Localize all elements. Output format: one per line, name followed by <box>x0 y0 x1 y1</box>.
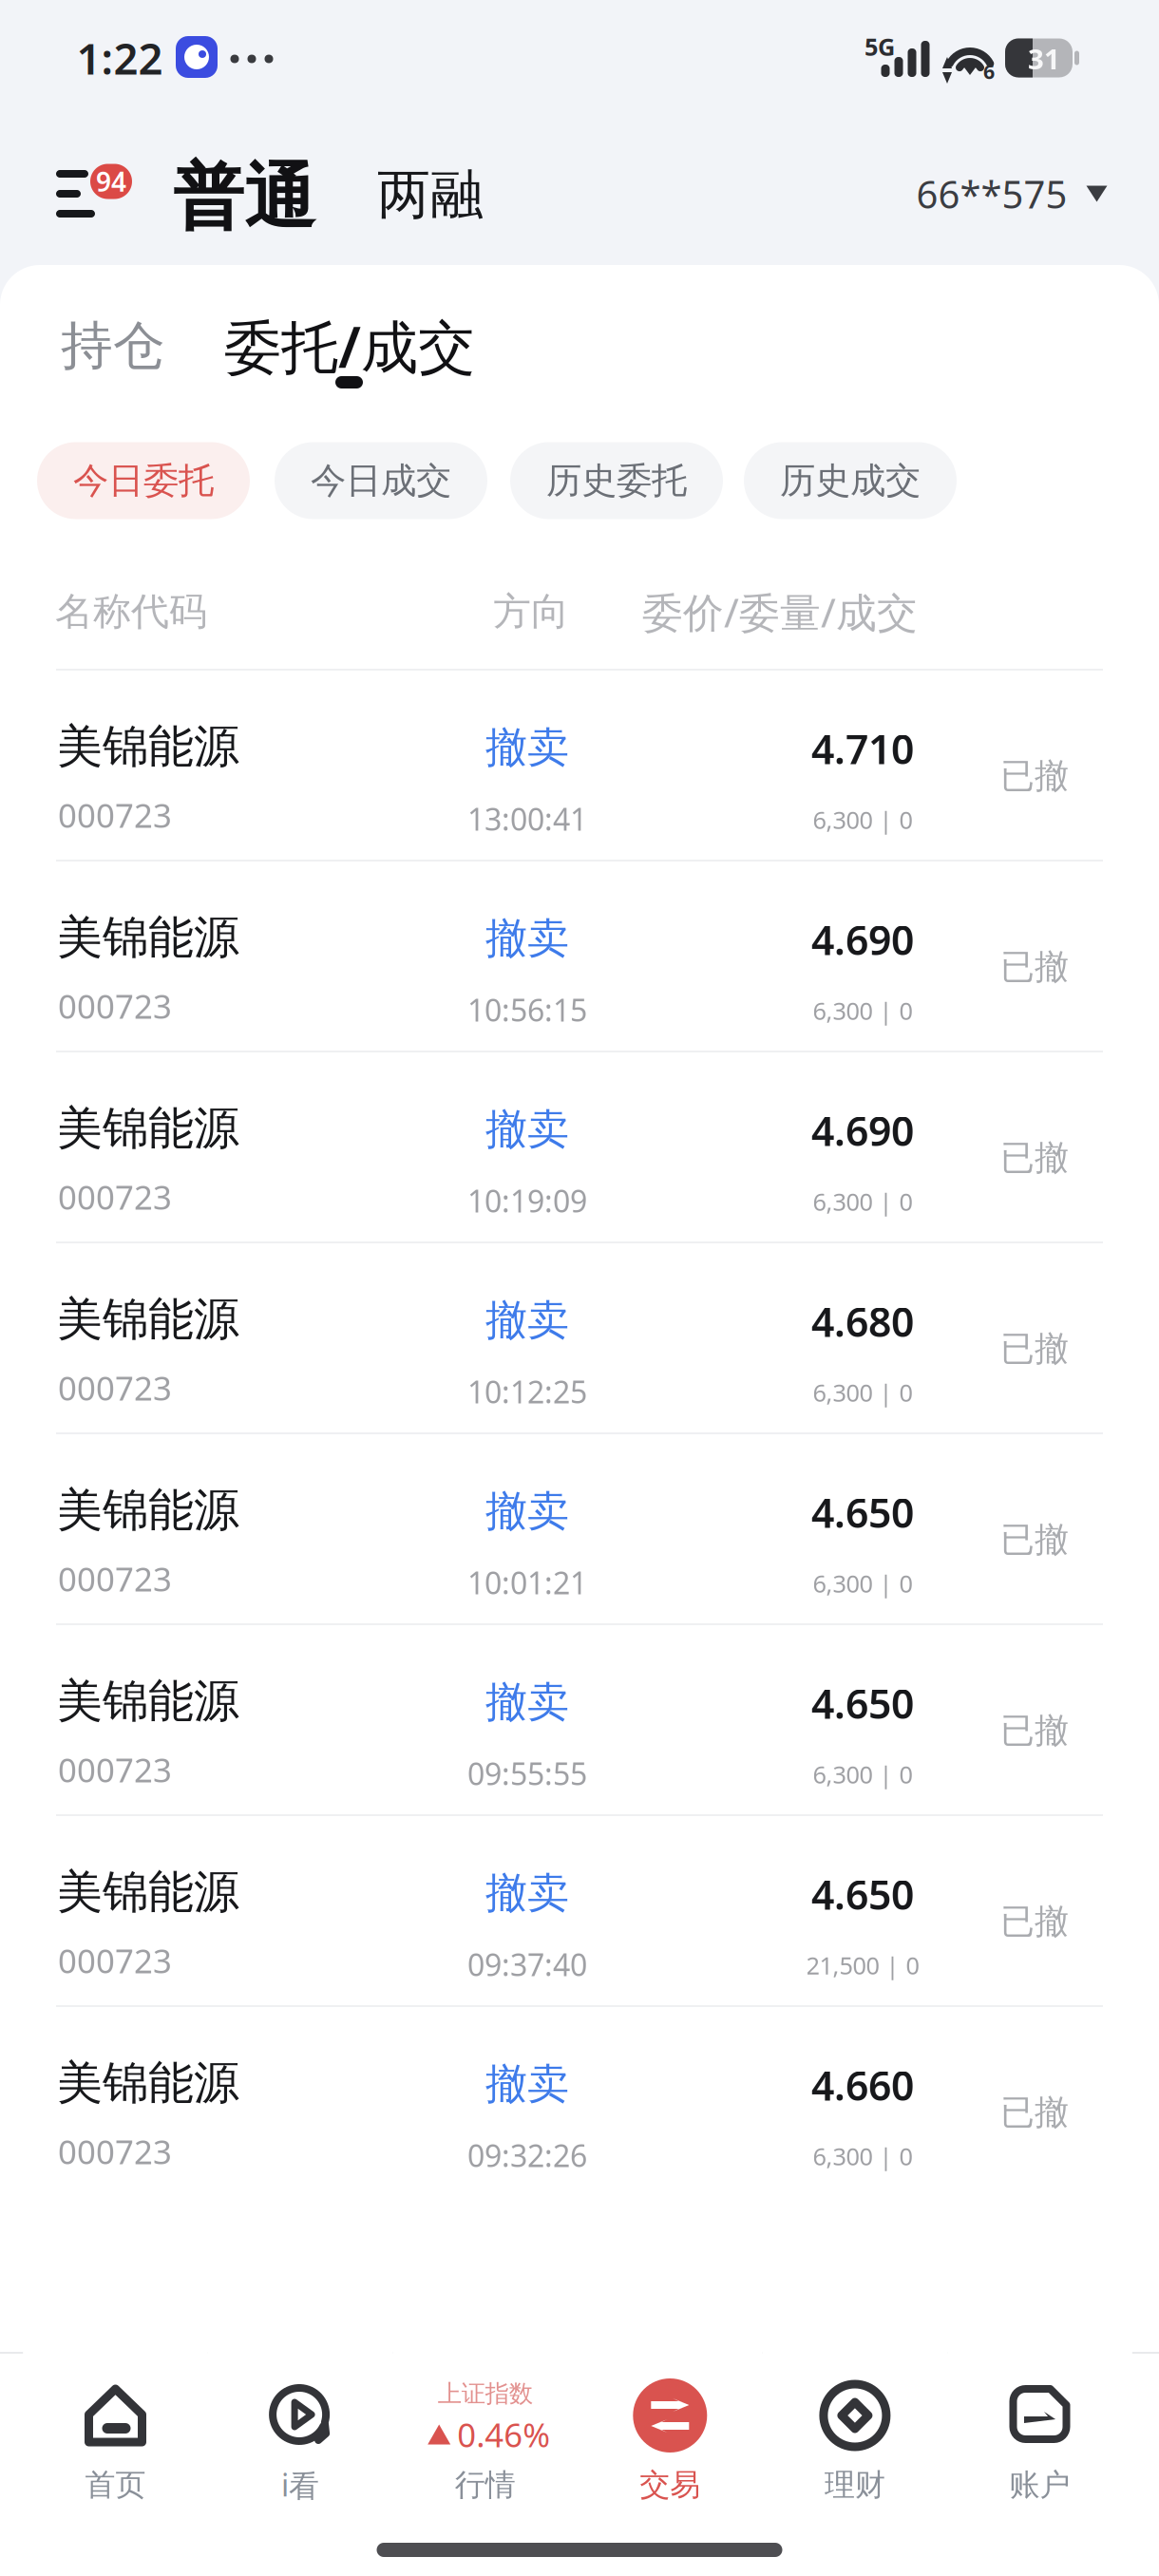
staticText: 09:55:55 <box>467 1753 587 1794</box>
button[interactable]: 美锦能源 <box>0 2005 1159 2196</box>
button[interactable]: 菜单 <box>56 158 134 224</box>
staticText: 000723 <box>58 2130 172 2173</box>
staticText: 美锦能源 <box>57 719 239 775</box>
staticText: 13:00:41 <box>467 799 587 839</box>
staticText: 撤卖 <box>485 1486 569 1537</box>
staticText: 5G <box>864 31 895 63</box>
staticText: 10:56:15 <box>467 990 587 1030</box>
staticText: 6,300 | 0 <box>813 1377 912 1408</box>
staticText: 美锦能源 <box>57 1482 239 1538</box>
staticText: 持仓 <box>61 314 165 378</box>
button[interactable]: 交易 <box>578 2352 762 2521</box>
staticText: 已撤 <box>1000 1328 1069 1370</box>
staticText: 09:32:26 <box>467 2135 587 2175</box>
button[interactable]: 今日委托 <box>37 442 250 519</box>
staticText: 理财 <box>825 2466 885 2503</box>
staticText: 撤卖 <box>485 2058 569 2110</box>
button[interactable]: 持仓 <box>61 314 165 378</box>
staticText: 1:22 <box>76 29 163 87</box>
staticText: 21,500 | 0 <box>806 1949 919 1981</box>
staticText: 000723 <box>58 1748 172 1791</box>
staticText: 委价/委量/成交 <box>642 585 918 639</box>
staticText: 撤卖 <box>485 1295 569 1346</box>
staticText: 历史委托 <box>546 459 687 502</box>
staticText: 已撤 <box>1000 946 1069 988</box>
staticText: 美锦能源 <box>57 1673 239 1729</box>
staticText: 首页 <box>85 2466 146 2503</box>
staticText: 已撤 <box>1000 1710 1069 1752</box>
button[interactable]: 66**575 <box>916 169 1107 219</box>
staticText: 0.46% <box>457 2413 550 2456</box>
button[interactable]: 普通 <box>173 154 315 241</box>
button[interactable]: 首页 <box>23 2352 208 2521</box>
button[interactable]: 委托/成交 <box>224 308 475 384</box>
staticText: 4.710 <box>811 722 914 775</box>
button[interactable]: 美锦能源 <box>0 1051 1159 1241</box>
button[interactable]: 今日成交 <box>275 442 487 519</box>
staticText: 已撤 <box>1000 1137 1069 1179</box>
button[interactable]: 美锦能源 <box>0 1432 1159 1623</box>
staticText: 4.650 <box>811 1485 914 1539</box>
button[interactable]: 历史成交 <box>744 442 957 519</box>
staticText: 6,300 | 0 <box>813 1567 912 1599</box>
staticText: 上证指数 <box>438 2379 533 2408</box>
button[interactable]: 美锦能源 <box>0 1623 1159 1814</box>
staticText: 交易 <box>640 2466 700 2503</box>
staticText: 美锦能源 <box>57 2055 239 2111</box>
staticText: 4.680 <box>811 1294 914 1348</box>
staticText: 撤卖 <box>485 722 569 773</box>
staticText: 4.660 <box>811 2058 914 2112</box>
staticText: 撤卖 <box>485 1676 569 1728</box>
staticText: 美锦能源 <box>57 1100 239 1156</box>
staticText: 方向 <box>493 588 569 635</box>
staticText: 000723 <box>58 1939 172 1982</box>
staticText: 历史成交 <box>780 459 921 502</box>
staticText: 000723 <box>58 984 172 1028</box>
staticText: 行情 <box>455 2466 516 2503</box>
staticText: 000723 <box>58 1557 172 1601</box>
staticText: 今日成交 <box>311 459 451 502</box>
button[interactable]: 理财 <box>762 2352 947 2521</box>
staticText: 已撤 <box>1000 755 1069 797</box>
staticText: 000723 <box>58 1366 172 1410</box>
staticText: 撤卖 <box>485 1104 569 1155</box>
staticText: 两融 <box>377 162 484 227</box>
button[interactable]: 美锦能源 <box>0 1241 1159 1432</box>
staticText: 10:19:09 <box>467 1180 587 1221</box>
staticText: 已撤 <box>1000 2091 1069 2133</box>
staticText: 6,300 | 0 <box>813 1758 912 1790</box>
staticText: 6,300 | 0 <box>813 995 912 1027</box>
staticText: 6,300 | 0 <box>813 804 912 836</box>
staticText: 美锦能源 <box>57 1291 239 1347</box>
staticText: 6,300 | 0 <box>813 1186 912 1218</box>
button[interactable]: 账户 <box>947 2352 1132 2521</box>
staticText: 美锦能源 <box>57 1864 239 1920</box>
button[interactable]: 历史委托 <box>510 442 723 519</box>
staticText: 31 <box>1028 40 1060 77</box>
staticText: i看 <box>281 2465 319 2505</box>
staticText: 今日委托 <box>73 459 214 502</box>
button[interactable]: 两融 <box>377 162 484 227</box>
button[interactable]: 美锦能源 <box>0 669 1159 860</box>
staticText: 撤卖 <box>485 1867 569 1919</box>
staticText: 10:01:21 <box>467 1562 587 1603</box>
staticText: 000723 <box>58 1175 172 1219</box>
button[interactable]: i看 <box>208 2352 393 2521</box>
staticText: 账户 <box>1009 2466 1070 2503</box>
button[interactable]: 上证指数 <box>393 2352 578 2521</box>
staticText: 撤卖 <box>485 913 569 964</box>
staticText: 美锦能源 <box>57 909 239 966</box>
staticText: 10:12:25 <box>467 1371 587 1412</box>
staticText: 94 <box>96 164 126 199</box>
staticText: 6 <box>983 58 995 85</box>
staticText: 4.690 <box>811 913 914 966</box>
staticText: 4.650 <box>811 1867 914 1921</box>
button[interactable]: 美锦能源 <box>0 1814 1159 2005</box>
staticText: 委托/成交 <box>224 308 475 384</box>
staticText: 000723 <box>58 793 172 837</box>
staticText: 4.690 <box>811 1103 914 1157</box>
staticText: 已撤 <box>1000 1519 1069 1561</box>
button[interactable]: 美锦能源 <box>0 860 1159 1051</box>
staticText: 普通 <box>173 154 315 241</box>
staticText: 09:37:40 <box>467 1944 587 1985</box>
